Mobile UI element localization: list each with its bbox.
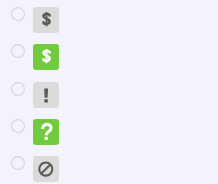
button[interactable]: Help [0, 119, 218, 145]
button[interactable]: Payment, unselected [0, 7, 218, 33]
button[interactable]: Alert [0, 82, 218, 108]
button[interactable]: Blocked [0, 156, 218, 182]
button[interactable]: Payment, active [0, 44, 218, 70]
